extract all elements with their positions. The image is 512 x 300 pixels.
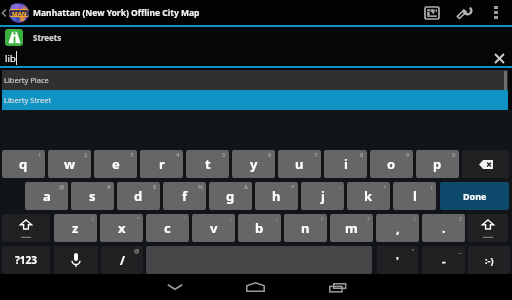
staticText: Done (463, 190, 487, 202)
staticText: Liberty Street (4, 95, 52, 105)
staticText: q (19, 155, 28, 173)
staticText: k (364, 187, 373, 205)
staticText: ? (367, 215, 370, 223)
button[interactable]: n (284, 214, 327, 242)
button[interactable]: Show map (416, 0, 448, 25)
button[interactable]: y (232, 150, 275, 178)
staticText: Liberty Place (4, 75, 49, 85)
staticText: n (301, 219, 310, 237)
button[interactable]: More options (480, 0, 512, 25)
staticText: d (134, 187, 143, 205)
button[interactable]: w (48, 150, 91, 178)
button[interactable]: Voice input (54, 246, 98, 274)
button[interactable]: c (146, 214, 189, 242)
button[interactable]: b (238, 214, 281, 242)
staticText: 0 (452, 151, 456, 159)
button[interactable]: x (100, 214, 143, 242)
button[interactable]: , (376, 214, 419, 242)
staticText: 9 (406, 151, 410, 159)
button[interactable]: j (301, 182, 344, 210)
button[interactable]: Recent apps (307, 274, 367, 300)
button[interactable]: s (71, 182, 114, 210)
button[interactable]: g (209, 182, 252, 210)
button[interactable]: ?123 (2, 246, 50, 274)
button[interactable]: Streets (0, 27, 512, 48)
staticText: t (205, 155, 211, 173)
button[interactable]: Hide keyboard (145, 274, 205, 300)
staticText: 1 (38, 151, 42, 159)
button[interactable]: o (370, 150, 413, 178)
button[interactable]: Shift (467, 214, 508, 242)
button[interactable]: . (422, 214, 465, 242)
button[interactable]: Shift key (2, 214, 50, 242)
staticText: @ (134, 247, 140, 255)
staticText: : (230, 215, 232, 223)
button[interactable]: r (140, 150, 183, 178)
button[interactable]: l (393, 182, 436, 210)
button[interactable]: Clear text (486, 48, 512, 68)
staticText: z (72, 219, 79, 237)
staticText: j (321, 187, 325, 205)
staticText: lib (5, 52, 16, 65)
staticText: / (120, 252, 125, 268)
staticText: 6 (268, 151, 272, 159)
button[interactable]: / (101, 246, 143, 274)
staticText: 2 (84, 151, 88, 159)
button[interactable]: Liberty Place (2, 70, 508, 90)
staticText: h (272, 187, 281, 205)
staticText: 5 (222, 151, 226, 159)
button[interactable]: v (192, 214, 235, 242)
button[interactable]: ' (377, 246, 418, 274)
staticText: ! (414, 215, 416, 223)
button[interactable]: t (186, 150, 229, 178)
staticText: 8 (360, 151, 364, 159)
staticText: - (339, 183, 341, 191)
staticText: f (182, 187, 188, 205)
staticText: ?123 (15, 253, 37, 267)
staticText: - (442, 253, 446, 268)
button[interactable]: z (54, 214, 97, 242)
button[interactable]: d (117, 182, 160, 210)
staticText: s (89, 187, 96, 205)
button[interactable]: p (416, 150, 459, 178)
staticText: p (433, 155, 442, 173)
staticText: , (396, 219, 400, 237)
button[interactable]: h (255, 182, 298, 210)
staticText: ( (431, 183, 433, 191)
staticText: 4 (176, 151, 180, 159)
staticText: g (226, 187, 235, 205)
button[interactable]: e (94, 150, 137, 178)
button[interactable]: Navigate up (0, 0, 29, 25)
staticText: :-) (485, 254, 494, 266)
button[interactable]: Done (440, 182, 509, 210)
button[interactable]: k (347, 182, 390, 210)
staticText: / (321, 215, 324, 223)
button[interactable]: - (422, 246, 465, 274)
staticText: x (118, 219, 126, 237)
staticText: Streets (33, 32, 62, 43)
button[interactable]: Tools (448, 0, 480, 25)
button[interactable]: i (324, 150, 367, 178)
staticText: r (159, 155, 165, 173)
button[interactable]: Home (225, 274, 285, 300)
staticText: $ (153, 183, 157, 191)
staticText: @ (59, 183, 65, 191)
staticText: 7 (314, 151, 318, 159)
button[interactable]: m (330, 214, 373, 242)
button[interactable]: a (25, 182, 68, 210)
button[interactable]: f (163, 182, 206, 210)
button[interactable]: :-) (468, 246, 510, 274)
staticText: o (387, 155, 396, 173)
staticText: b (255, 219, 264, 237)
staticText: e (112, 155, 120, 173)
staticText: + (383, 183, 387, 191)
staticText: ' (396, 253, 399, 268)
staticText: m (345, 219, 358, 237)
button[interactable]: Liberty Street (2, 90, 508, 110)
button[interactable]: q (2, 150, 45, 178)
staticText: y (250, 155, 258, 173)
staticText: _ (459, 247, 462, 255)
button[interactable]: Delete (462, 150, 509, 178)
button[interactable]: u (278, 150, 321, 178)
